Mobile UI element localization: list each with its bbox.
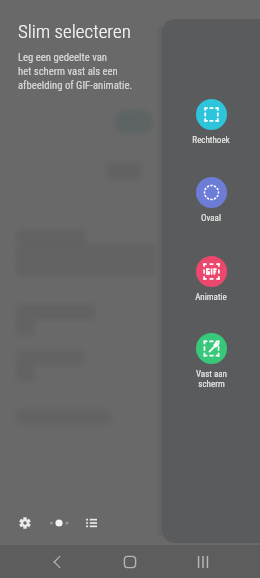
- staticText: Slim selecteren: [18, 20, 131, 42]
- staticText: Leg een gedeelte van het scherm vast als…: [18, 51, 133, 92]
- button[interactable]: Animatie: [188, 256, 234, 303]
- button[interactable]: Lijstweergave: [78, 510, 104, 536]
- staticText: Animatie: [195, 292, 227, 303]
- button[interactable]: Terug: [21, 545, 93, 578]
- button[interactable]: Start: [93, 545, 166, 578]
- button[interactable]: Instellingen: [12, 510, 38, 536]
- staticText: Ovaal: [201, 213, 221, 224]
- button[interactable]: Vast aan scherm: [188, 333, 234, 389]
- staticText: Rechthoek: [192, 135, 230, 146]
- button[interactable]: Rechthoek: [188, 99, 234, 146]
- button[interactable]: Ovaal: [188, 177, 234, 224]
- staticText: Vast aan scherm: [196, 369, 227, 389]
- button[interactable]: Recente apps: [166, 545, 239, 578]
